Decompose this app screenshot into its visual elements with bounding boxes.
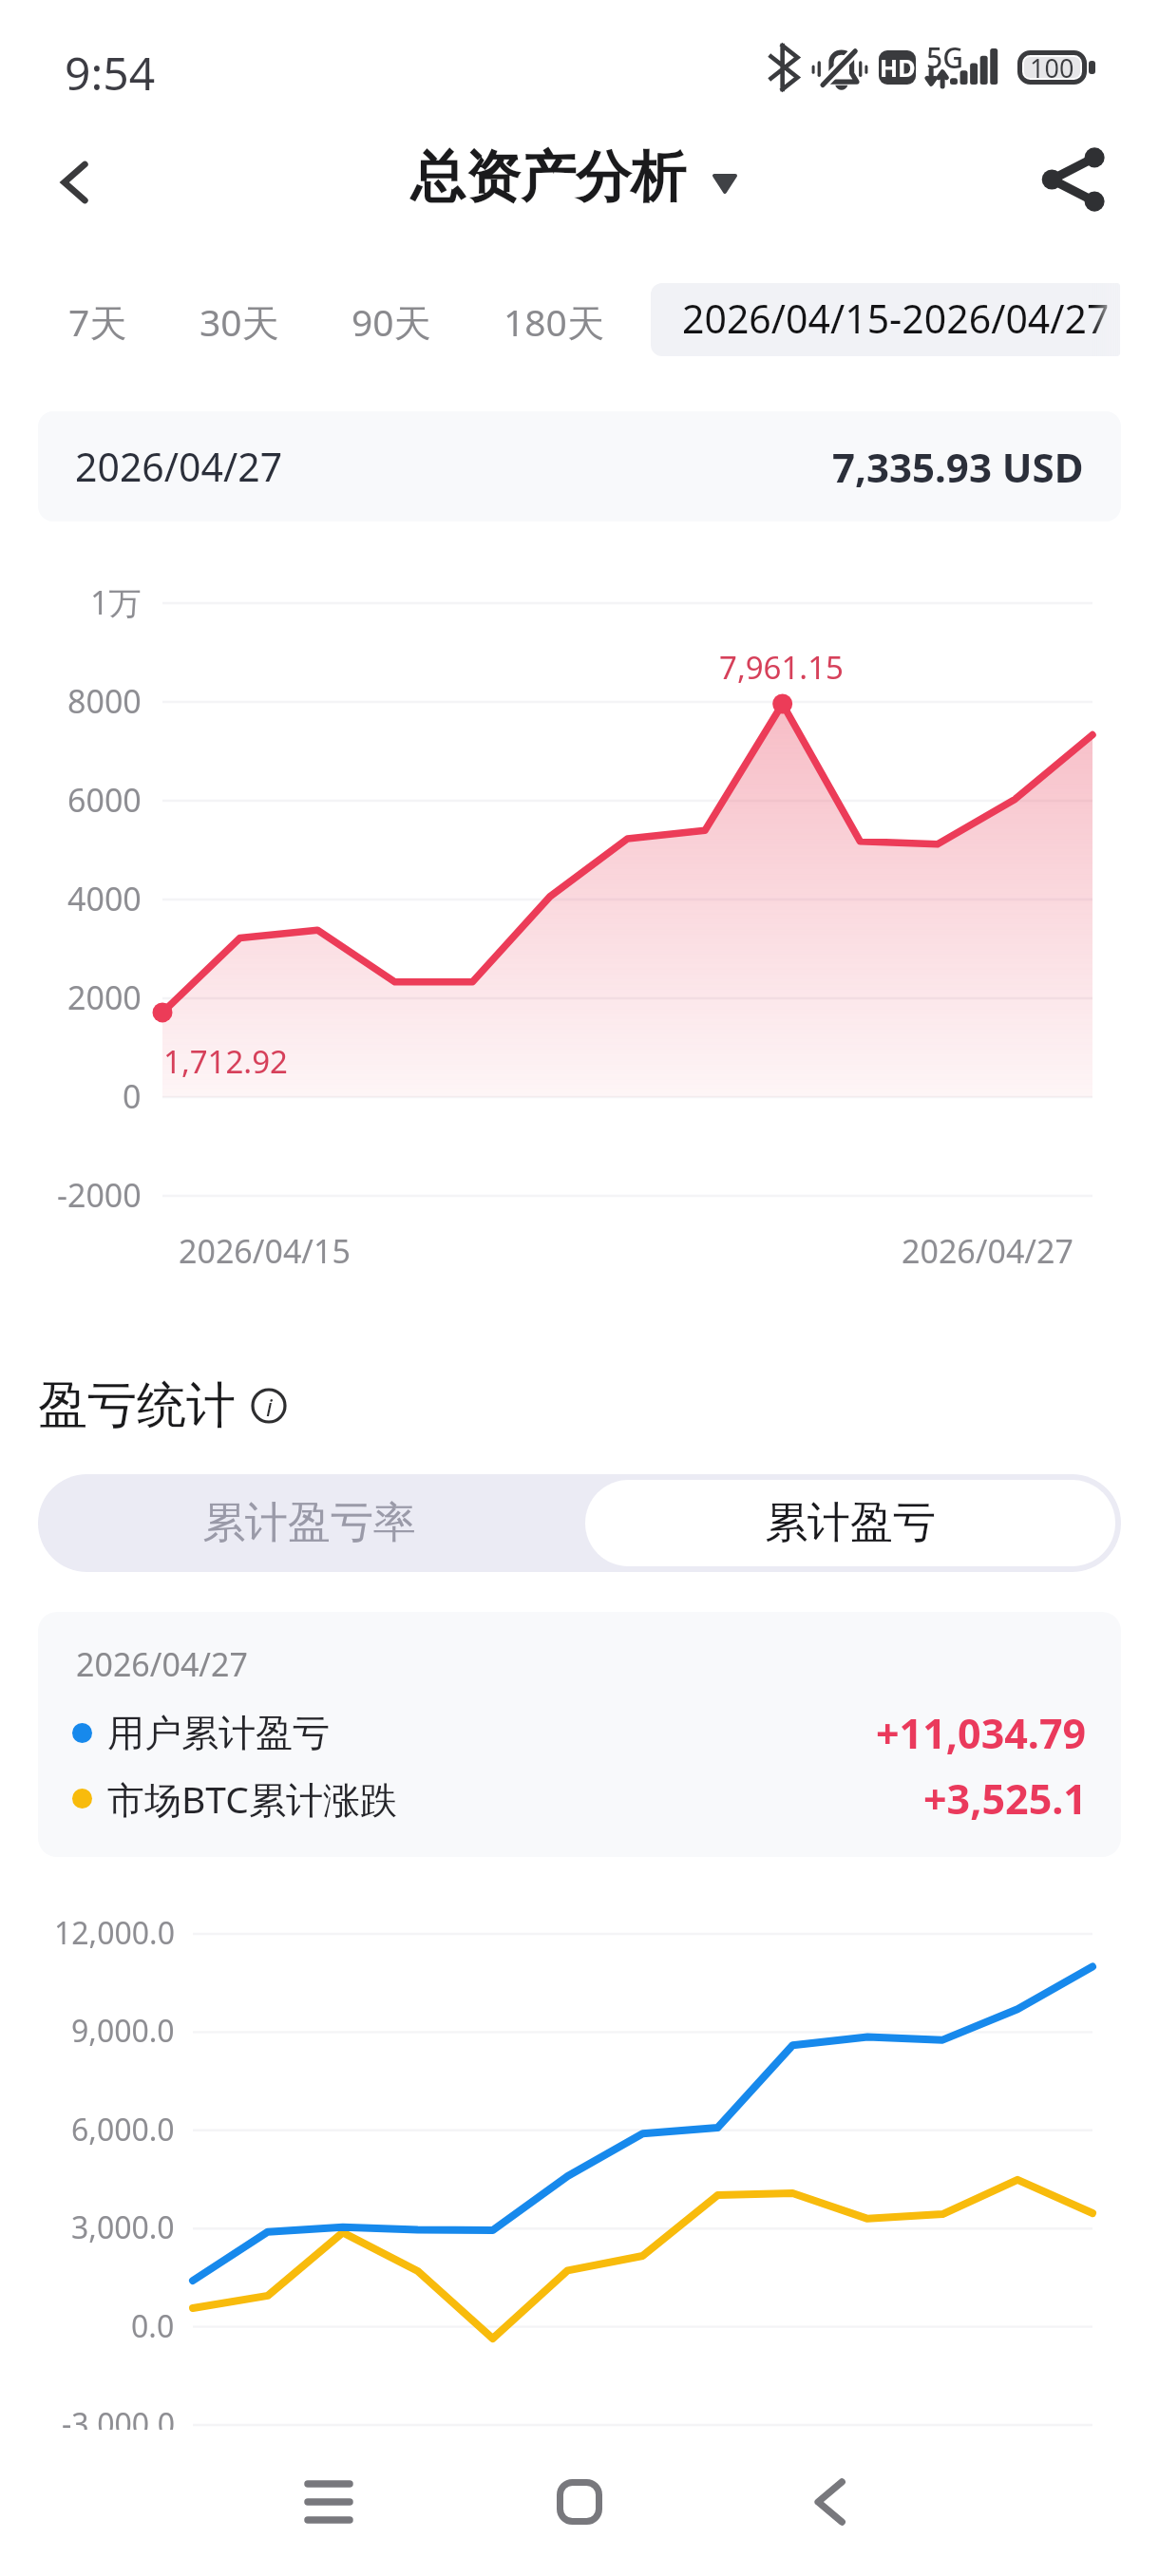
staticText: 2026/04/15 — [179, 1229, 351, 1273]
staticText: 2026/04/27 — [75, 440, 283, 493]
staticText: 市场BTC累计涨跌 — [107, 1773, 397, 1824]
staticText: 7,961.15 — [719, 646, 844, 689]
staticText: 6,000.0 — [71, 2109, 175, 2150]
staticText: 累计盈亏 — [765, 1496, 936, 1550]
staticText: 12,000.0 — [54, 1912, 175, 1954]
button[interactable]: Recent apps — [272, 2445, 386, 2559]
staticText: HD — [880, 51, 916, 84]
staticText: 9:54 — [65, 42, 156, 104]
staticText: 7,335.93 USD — [832, 440, 1084, 494]
staticText: 2026/04/27 — [76, 1642, 248, 1686]
staticText: +11,034.79 — [876, 1705, 1087, 1761]
button[interactable]: 180天 — [486, 285, 621, 358]
button[interactable]: 2026/04/27 — [38, 411, 1121, 521]
button[interactable]: Back — [773, 2445, 887, 2559]
staticText: 4000 — [67, 877, 142, 920]
button[interactable]: 30天 — [182, 285, 296, 358]
staticText: +3,525.1 — [923, 1771, 1087, 1827]
staticText: 0.0 — [131, 2305, 175, 2347]
staticText: 9,000.0 — [71, 2010, 175, 2052]
staticText: 180天 — [503, 296, 604, 347]
button[interactable]: 7天 — [51, 285, 144, 358]
staticText: 2026/04/27 — [902, 1229, 1073, 1273]
staticText: 盈亏统计 — [38, 1374, 236, 1437]
staticText: -3,000.0 — [62, 2403, 175, 2430]
staticText: 累计盈亏率 — [202, 1496, 416, 1550]
button[interactable]: Back — [27, 131, 122, 226]
staticText: 2000 — [67, 975, 142, 1019]
button[interactable]: About profit and loss statistics — [251, 1388, 287, 1424]
staticText: 2026/04/15-2026/04/27 — [682, 292, 1110, 345]
staticText: 1万 — [90, 580, 142, 624]
button[interactable]: 累计盈亏率 — [38, 1474, 579, 1572]
button[interactable]: 2026/04/15-2026/04/27 — [651, 283, 1120, 356]
staticText: 0 — [123, 1074, 142, 1118]
staticText: 8000 — [67, 679, 142, 723]
staticText: 30天 — [199, 296, 279, 347]
staticText: 总资产分析 — [410, 142, 686, 212]
button[interactable]: Share — [1025, 132, 1120, 227]
staticText: i — [266, 1390, 273, 1423]
staticText: 1,712.92 — [163, 1040, 288, 1083]
staticText: 3,000.0 — [71, 2207, 175, 2248]
button[interactable]: 90天 — [334, 285, 448, 358]
button[interactable]: 累计盈亏 — [585, 1480, 1115, 1566]
staticText: 7天 — [68, 296, 127, 347]
button[interactable]: 总资产分析 — [410, 142, 737, 212]
staticText: 100 — [1030, 50, 1074, 85]
staticText: -2000 — [57, 1173, 142, 1217]
staticText: 90天 — [351, 296, 431, 347]
button[interactable]: Home — [522, 2445, 636, 2559]
staticText: 用户累计盈亏 — [107, 1710, 330, 1756]
staticText: 6000 — [67, 778, 142, 822]
staticText: 5G — [926, 38, 963, 77]
